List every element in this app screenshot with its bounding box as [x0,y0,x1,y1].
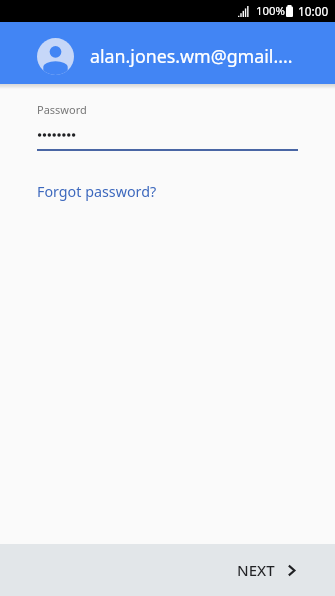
button[interactable]: Forgot password? [37,182,159,201]
button[interactable]: NEXT [219,550,335,590]
staticText: Password [37,102,87,117]
button[interactable]: Password field [37,99,298,151]
staticText: 10:00 [298,3,329,19]
other: Signal strength [238,6,249,17]
staticText: Forgot password? [37,182,157,201]
other: Battery full [286,5,293,17]
staticText: NEXT [237,560,275,580]
button[interactable]: alan.jones.wm@gmail.... [0,22,335,84]
staticText: alan.jones.wm@gmail.... [90,44,293,68]
staticText: 100% [256,3,286,19]
